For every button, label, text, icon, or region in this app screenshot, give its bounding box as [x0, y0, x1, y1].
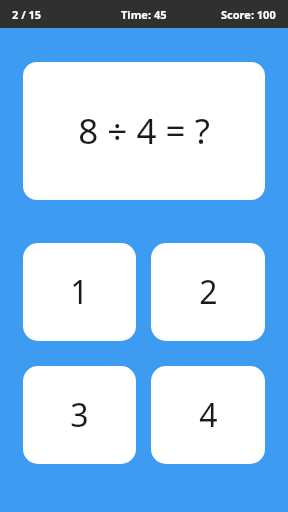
staticText: 8 ÷ 4 = ? — [78, 107, 210, 155]
staticText: 3 — [70, 393, 89, 437]
staticText: 2 — [199, 270, 218, 314]
staticText: 4 — [199, 393, 218, 437]
staticText: 2 / 15 — [12, 7, 42, 22]
staticText: Score: 100 — [221, 7, 276, 22]
staticText: 1 — [70, 270, 89, 314]
staticText: Time: 45 — [121, 7, 167, 22]
button[interactable]: 8 ÷ 4 = ? — [23, 62, 265, 200]
button[interactable]: 2 — [151, 243, 265, 341]
button[interactable]: 1 — [23, 243, 136, 341]
button[interactable]: 3 — [23, 366, 136, 464]
button[interactable]: 4 — [151, 366, 265, 464]
